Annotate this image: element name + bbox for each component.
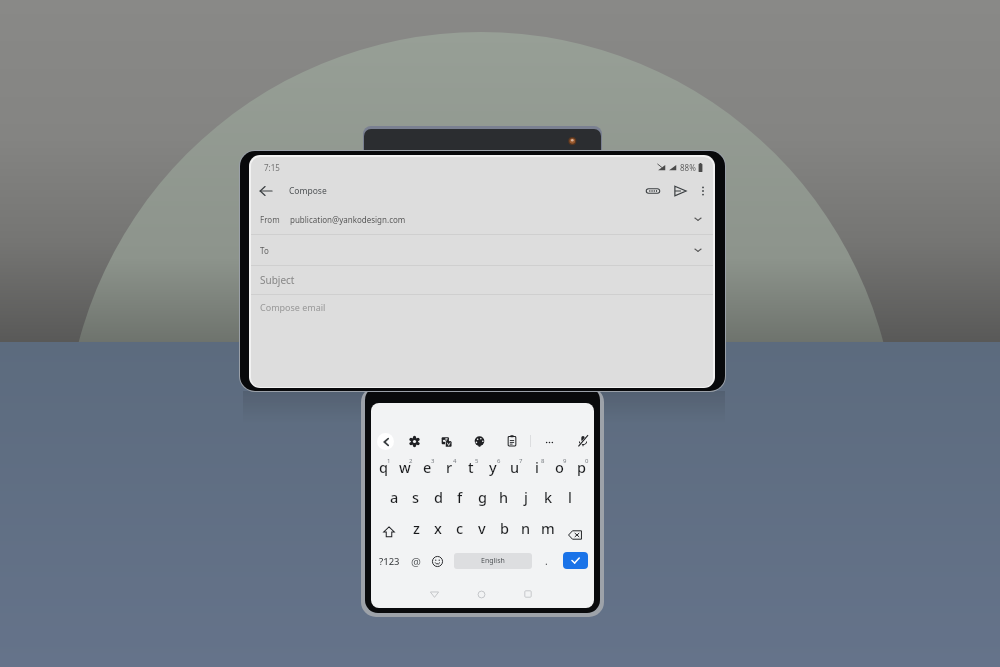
staticText: a (390, 487, 399, 507)
button[interactable]: n (515, 515, 537, 541)
staticText: h (499, 487, 509, 507)
staticText: ?123 (379, 555, 400, 568)
button[interactable]: Attach file (645, 183, 661, 199)
button[interactable]: f (449, 484, 471, 510)
button[interactable]: Shift (383, 526, 395, 538)
staticText: s (412, 487, 420, 507)
staticText: r (446, 457, 453, 477)
button[interactable]: Clipboard (506, 435, 518, 447)
staticText: q (379, 457, 388, 477)
button[interactable]: u (504, 454, 526, 480)
button[interactable]: t (460, 454, 482, 480)
staticText: 3 (431, 457, 435, 465)
button[interactable]: @ (407, 552, 425, 570)
staticText: d (434, 487, 443, 507)
button[interactable]: i (526, 454, 548, 480)
button[interactable]: a (383, 484, 405, 510)
button[interactable]: Emoji (432, 556, 443, 567)
button[interactable]: Back (258, 183, 274, 199)
staticText: u (510, 457, 520, 477)
staticText: f (457, 487, 463, 507)
button[interactable]: k (537, 484, 559, 510)
staticText: t (468, 457, 474, 477)
button[interactable]: y (482, 454, 504, 480)
staticText: w (399, 457, 411, 477)
button[interactable]: x (427, 515, 449, 541)
button[interactable]: Home (477, 590, 486, 599)
button[interactable]: b (493, 515, 515, 541)
button[interactable]: Back (430, 590, 439, 599)
button[interactable]: More options (544, 437, 555, 448)
button[interactable]: Translate (441, 436, 452, 447)
staticText: publication@yankodesign.com (290, 214, 406, 225)
staticText: 0 (585, 457, 589, 465)
button[interactable]: p (570, 454, 592, 480)
button[interactable]: d (427, 484, 449, 510)
button[interactable]: Enter (563, 552, 588, 569)
button[interactable]: Backspace (568, 528, 582, 542)
button[interactable]: o (548, 454, 570, 480)
staticText: 4 (453, 457, 457, 465)
staticText: Compose (289, 185, 327, 197)
button[interactable]: Back (377, 433, 394, 450)
staticText: c (456, 518, 464, 538)
button[interactable]: q (372, 454, 394, 480)
staticText: i (535, 457, 539, 477)
button[interactable]: . (539, 552, 553, 570)
staticText: 7 (519, 457, 523, 465)
button[interactable]: More options (695, 183, 711, 199)
staticText: o (555, 457, 564, 477)
staticText: To (260, 245, 269, 256)
staticText: v (478, 518, 486, 538)
staticText: From (260, 214, 280, 225)
staticText: @ (411, 554, 421, 569)
staticText: k (544, 487, 553, 507)
staticText: l (568, 487, 572, 507)
staticText: 7:15 (264, 162, 280, 173)
button[interactable]: v (471, 515, 493, 541)
button[interactable]: From (251, 204, 713, 234)
staticText: b (500, 518, 509, 538)
button[interactable]: ?123 (372, 552, 406, 570)
button[interactable]: Compose (289, 183, 327, 199)
button[interactable]: To (251, 235, 713, 265)
staticText: g (478, 487, 487, 507)
staticText: y (489, 457, 497, 477)
button[interactable]: m (537, 515, 559, 541)
button[interactable]: Settings (409, 436, 420, 447)
button[interactable]: Compose email (251, 295, 713, 341)
button[interactable]: j (515, 484, 537, 510)
staticText: m (541, 518, 555, 538)
staticText: 2 (409, 457, 413, 465)
staticText: 1 (387, 457, 391, 465)
staticText: 9 (563, 457, 567, 465)
button[interactable]: z (405, 515, 427, 541)
button[interactable]: g (471, 484, 493, 510)
staticText: 8 (541, 457, 545, 465)
button[interactable]: Recent apps (524, 590, 532, 598)
button[interactable]: Themes (474, 436, 485, 447)
staticText: e (423, 457, 432, 477)
button[interactable]: h (493, 484, 515, 510)
staticText: Subject (260, 273, 295, 287)
button[interactable]: s (405, 484, 427, 510)
staticText: z (413, 518, 420, 538)
staticText: 88% (680, 162, 696, 173)
staticText: j (524, 487, 528, 507)
button[interactable]: Voice input off (577, 435, 589, 447)
staticText: x (434, 518, 442, 538)
button[interactable]: l (559, 484, 581, 510)
staticText: . (545, 554, 548, 568)
staticText: Compose email (260, 301, 326, 313)
staticText: English (481, 556, 505, 566)
staticText: p (577, 457, 586, 477)
button[interactable]: w (394, 454, 416, 480)
button[interactable]: English (454, 553, 532, 569)
staticText: 5 (475, 457, 479, 465)
button[interactable]: r (438, 454, 460, 480)
button[interactable]: c (449, 515, 471, 541)
button[interactable]: Subject (251, 266, 713, 294)
staticText: 6 (497, 457, 501, 465)
button[interactable]: e (416, 454, 438, 480)
button[interactable]: Send (672, 183, 688, 199)
